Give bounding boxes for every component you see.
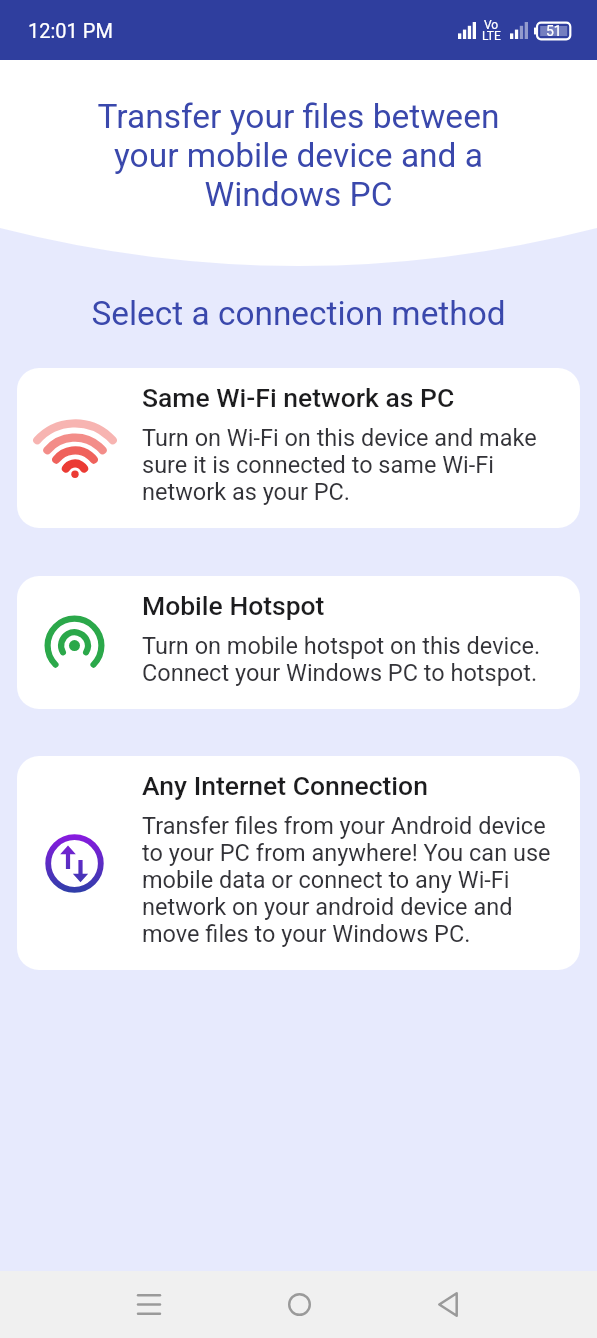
staticText: Any Internet Connection: [142, 770, 428, 801]
staticText: Turn on mobile hotspot on this device. C…: [142, 632, 568, 686]
button[interactable]: Home: [262, 1271, 336, 1338]
staticText: Mobile Hotspot: [142, 590, 325, 621]
staticText: Vo: [484, 18, 499, 32]
button[interactable]: Any Internet Connection: [17, 756, 580, 970]
button[interactable]: Back: [411, 1271, 485, 1338]
staticText: Transfer files from your Android device …: [142, 812, 568, 947]
button[interactable]: Recent apps: [112, 1271, 186, 1338]
button[interactable]: Mobile Hotspot: [17, 576, 580, 709]
staticText: 51: [546, 23, 562, 39]
button[interactable]: Same Wi-Fi network as PC: [17, 368, 580, 528]
staticText: Same Wi-Fi network as PC: [142, 382, 455, 413]
staticText: Transfer your files between your mobile …: [84, 97, 513, 214]
staticText: Turn on Wi-Fi on this device and make su…: [142, 424, 568, 505]
staticText: LTE: [482, 29, 501, 43]
staticText: 12:01 PM: [28, 19, 113, 42]
staticText: Select a connection method: [0, 294, 597, 333]
